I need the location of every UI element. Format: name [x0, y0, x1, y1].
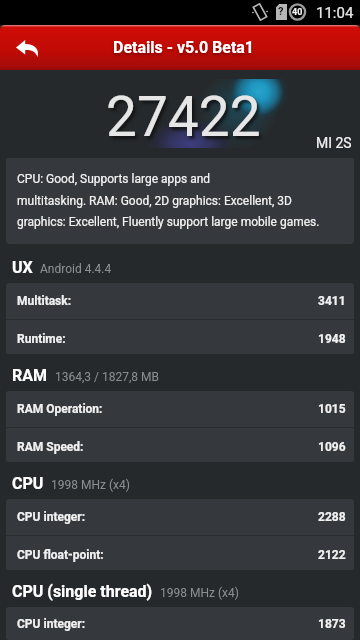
staticText: 2288 [318, 510, 346, 524]
staticText: 1948 [318, 332, 346, 346]
staticText: 40 [292, 7, 303, 18]
staticText: 1998 MHz (x4) [160, 586, 239, 600]
staticText: 1015 [318, 402, 346, 416]
staticText: CPU float-point: [17, 548, 104, 562]
button[interactable]: RAM Speed: [6, 427, 354, 462]
staticText: 1873 [318, 617, 346, 631]
staticText: CPU integer: [17, 617, 86, 631]
staticText: 1364,3 / 1827,8 MB [55, 370, 159, 384]
staticText: Runtime: [17, 332, 66, 346]
button[interactable]: CPU integer: [6, 607, 354, 640]
button[interactable]: Multitask: [6, 283, 354, 319]
staticText: CPU: Good, Supports large apps and multi… [17, 172, 320, 229]
staticText: MI 2S [316, 135, 352, 151]
button[interactable]: RAM Operation: [6, 391, 354, 427]
staticText: UX [12, 258, 33, 277]
button[interactable]: Back [0, 25, 56, 70]
staticText: CPU (single thread) [12, 582, 153, 601]
button[interactable]: Runtime: [6, 319, 354, 354]
staticText: Android 4.4.4 [40, 262, 112, 276]
staticText: RAM [12, 366, 48, 385]
staticText: Details - v5.0 Beta1 [113, 38, 255, 57]
staticText: 2122 [318, 548, 346, 562]
staticText: CPU integer: [17, 510, 86, 524]
staticText: RAM Speed: [17, 440, 84, 454]
staticText: CPU [12, 474, 44, 493]
staticText: 27422 [106, 85, 261, 149]
staticText: 3411 [318, 294, 346, 308]
staticText: ? [278, 5, 284, 18]
button[interactable]: CPU float-point: [6, 535, 354, 570]
staticText: Multitask: [17, 294, 72, 308]
staticText: 11:04 [316, 4, 354, 22]
staticText: 1998 MHz (x4) [51, 478, 130, 492]
staticText: RAM Operation: [17, 402, 103, 416]
button[interactable]: CPU integer: [6, 499, 354, 535]
staticText: 1096 [318, 440, 346, 454]
